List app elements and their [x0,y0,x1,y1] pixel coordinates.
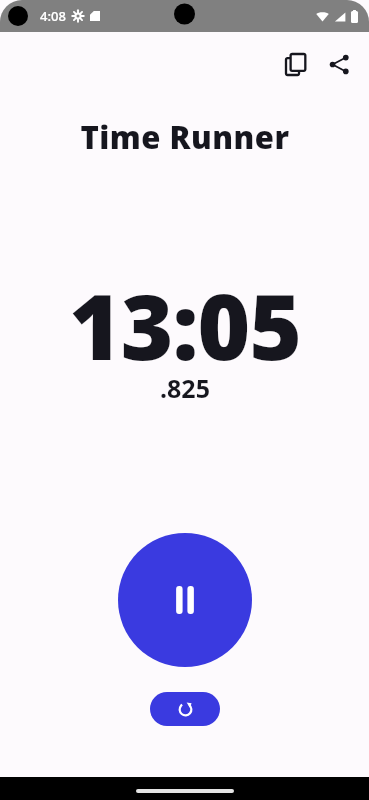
button[interactable]: Pause [118,533,252,667]
staticText: 13:05 [69,264,301,387]
button[interactable]: Share [319,44,359,84]
staticText: 4:08 [40,7,66,25]
staticText: .825 [160,371,210,405]
button[interactable]: Reset [150,692,220,726]
button[interactable]: Copy [276,44,316,84]
staticText: Time Runner [80,116,290,158]
